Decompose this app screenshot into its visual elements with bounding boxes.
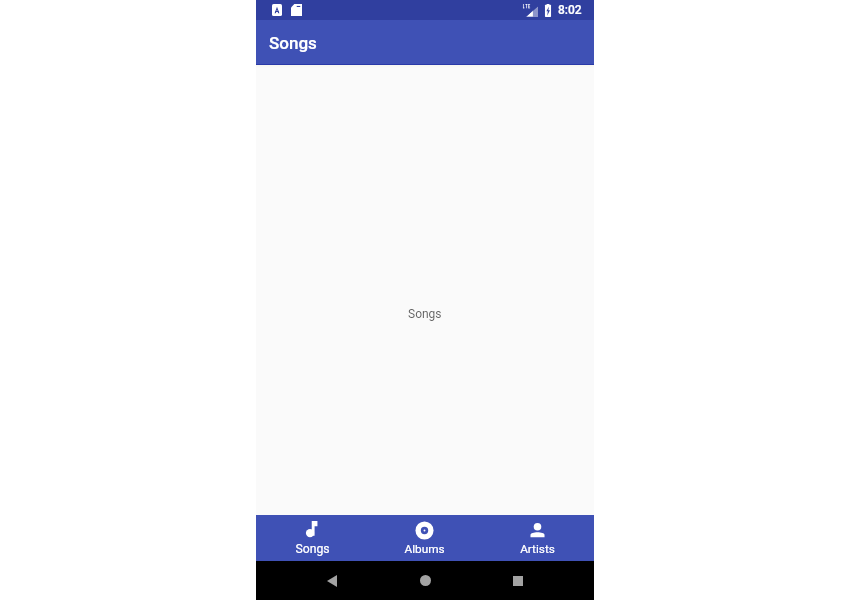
button[interactable]: Albums [368,515,481,561]
button[interactable]: Back [301,561,363,600]
staticText: Albums [404,542,445,556]
button[interactable]: Recent apps [487,561,549,600]
staticText: 8:02 [558,3,582,17]
staticText: Songs [295,542,330,556]
staticText: Artists [520,542,555,556]
button[interactable]: Artists [481,515,594,561]
staticText: Songs [408,307,442,321]
staticText: Songs [269,33,317,53]
button[interactable]: Songs [256,20,594,65]
button[interactable]: Home [394,561,456,600]
button[interactable]: Songs [256,515,368,561]
